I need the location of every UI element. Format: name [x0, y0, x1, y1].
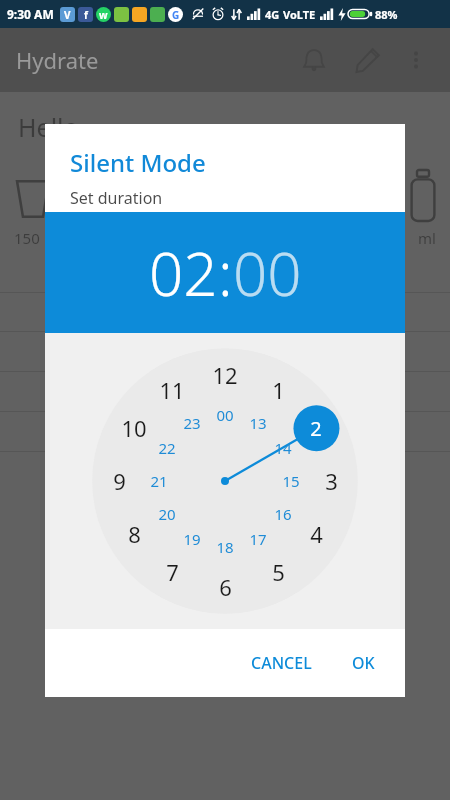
- button[interactable]: 18: [203, 525, 247, 569]
- button[interactable]: 13: [236, 401, 280, 445]
- staticText: 16: [274, 504, 292, 524]
- staticText: 21: [150, 471, 168, 491]
- staticText: 13: [249, 413, 267, 433]
- staticText: V: [64, 8, 71, 22]
- button[interactable]: 23: [170, 401, 214, 445]
- staticText: Set duration: [70, 187, 163, 209]
- staticText: 23: [183, 413, 201, 433]
- staticText: 7: [166, 557, 179, 587]
- staticText: G: [172, 8, 180, 22]
- staticText: 9:30 AM: [7, 6, 54, 22]
- staticText: 6: [219, 572, 232, 602]
- staticText: OK: [352, 652, 375, 674]
- staticText: 8: [128, 519, 141, 549]
- staticText: Hydrate: [16, 45, 99, 75]
- staticText: 150: [14, 228, 40, 248]
- staticText: 00: [233, 232, 302, 314]
- staticText: 17: [249, 529, 267, 549]
- button[interactable]: 21: [137, 459, 181, 503]
- staticText: 4: [310, 519, 323, 549]
- button[interactable]: 12: [203, 353, 247, 397]
- button[interactable]: 02: [149, 232, 218, 314]
- button[interactable]: 9: [97, 459, 141, 503]
- button[interactable]: CANCEL: [239, 642, 324, 684]
- staticText: 3: [325, 466, 338, 496]
- button[interactable]: OK: [340, 642, 387, 684]
- button[interactable]: 3: [309, 459, 353, 503]
- staticText: 00: [216, 405, 234, 425]
- staticText: 9: [113, 466, 126, 496]
- staticText: 88%: [375, 7, 398, 22]
- button[interactable]: 2: [294, 406, 338, 450]
- button[interactable]: 5: [256, 550, 300, 594]
- staticText: 15: [282, 471, 300, 491]
- staticText: 5: [272, 557, 285, 587]
- staticText: 22: [158, 438, 176, 458]
- staticText: 14: [274, 438, 292, 458]
- button[interactable]: 00: [203, 393, 247, 437]
- staticText: CANCEL: [251, 652, 312, 674]
- button[interactable]: 7: [150, 550, 194, 594]
- staticText: f: [84, 8, 88, 22]
- button[interactable]: 1: [256, 368, 300, 412]
- button[interactable]: 15: [269, 459, 313, 503]
- staticText: VoLTE: [283, 7, 316, 22]
- staticText: 20: [158, 504, 176, 524]
- button[interactable]: 00: [233, 232, 302, 314]
- staticText: 02: [149, 232, 218, 314]
- button[interactable]: 20: [145, 492, 189, 536]
- button[interactable]: 4: [294, 512, 338, 556]
- staticText: w: [99, 8, 108, 22]
- staticText: 19: [183, 529, 201, 549]
- button[interactable]: 17: [236, 517, 280, 561]
- button[interactable]: 19: [170, 517, 214, 561]
- button[interactable]: 22: [145, 426, 189, 470]
- staticText: ml: [418, 228, 436, 248]
- staticText: Hello: [18, 110, 79, 144]
- staticText: 11: [159, 375, 185, 405]
- staticText: :: [218, 232, 233, 314]
- staticText: 18: [216, 537, 234, 557]
- button[interactable]: 6: [203, 565, 247, 609]
- button[interactable]: 11: [150, 368, 194, 412]
- staticText: Silent Mode: [70, 146, 206, 179]
- button[interactable]: 10: [112, 406, 156, 450]
- button[interactable]: 8: [112, 512, 156, 556]
- button[interactable]: 14: [261, 426, 305, 470]
- staticText: 1: [272, 375, 285, 405]
- staticText: 10: [121, 413, 147, 443]
- staticText: 12: [212, 360, 238, 390]
- staticText: 4G: [265, 7, 280, 22]
- staticText: 2: [310, 415, 322, 442]
- button[interactable]: 16: [261, 492, 305, 536]
